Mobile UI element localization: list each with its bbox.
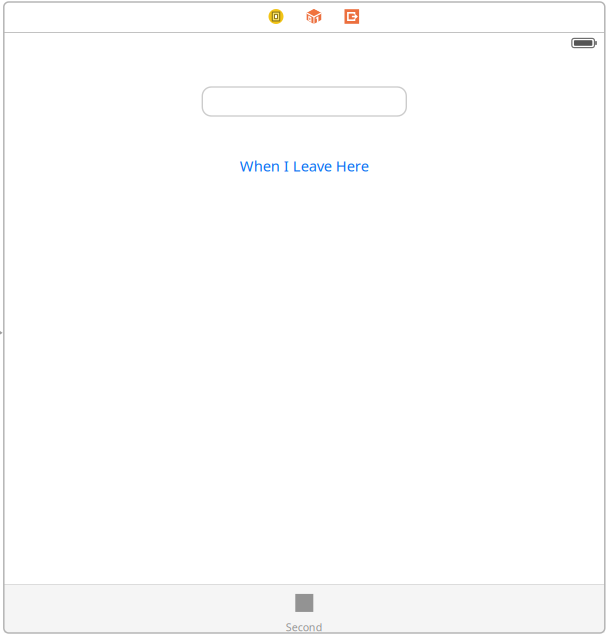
button[interactable]: When I Leave Here xyxy=(240,156,369,175)
staticText: Second xyxy=(286,620,323,634)
button[interactable]: Second xyxy=(4,584,605,633)
staticText: When I Leave Here xyxy=(240,156,369,175)
